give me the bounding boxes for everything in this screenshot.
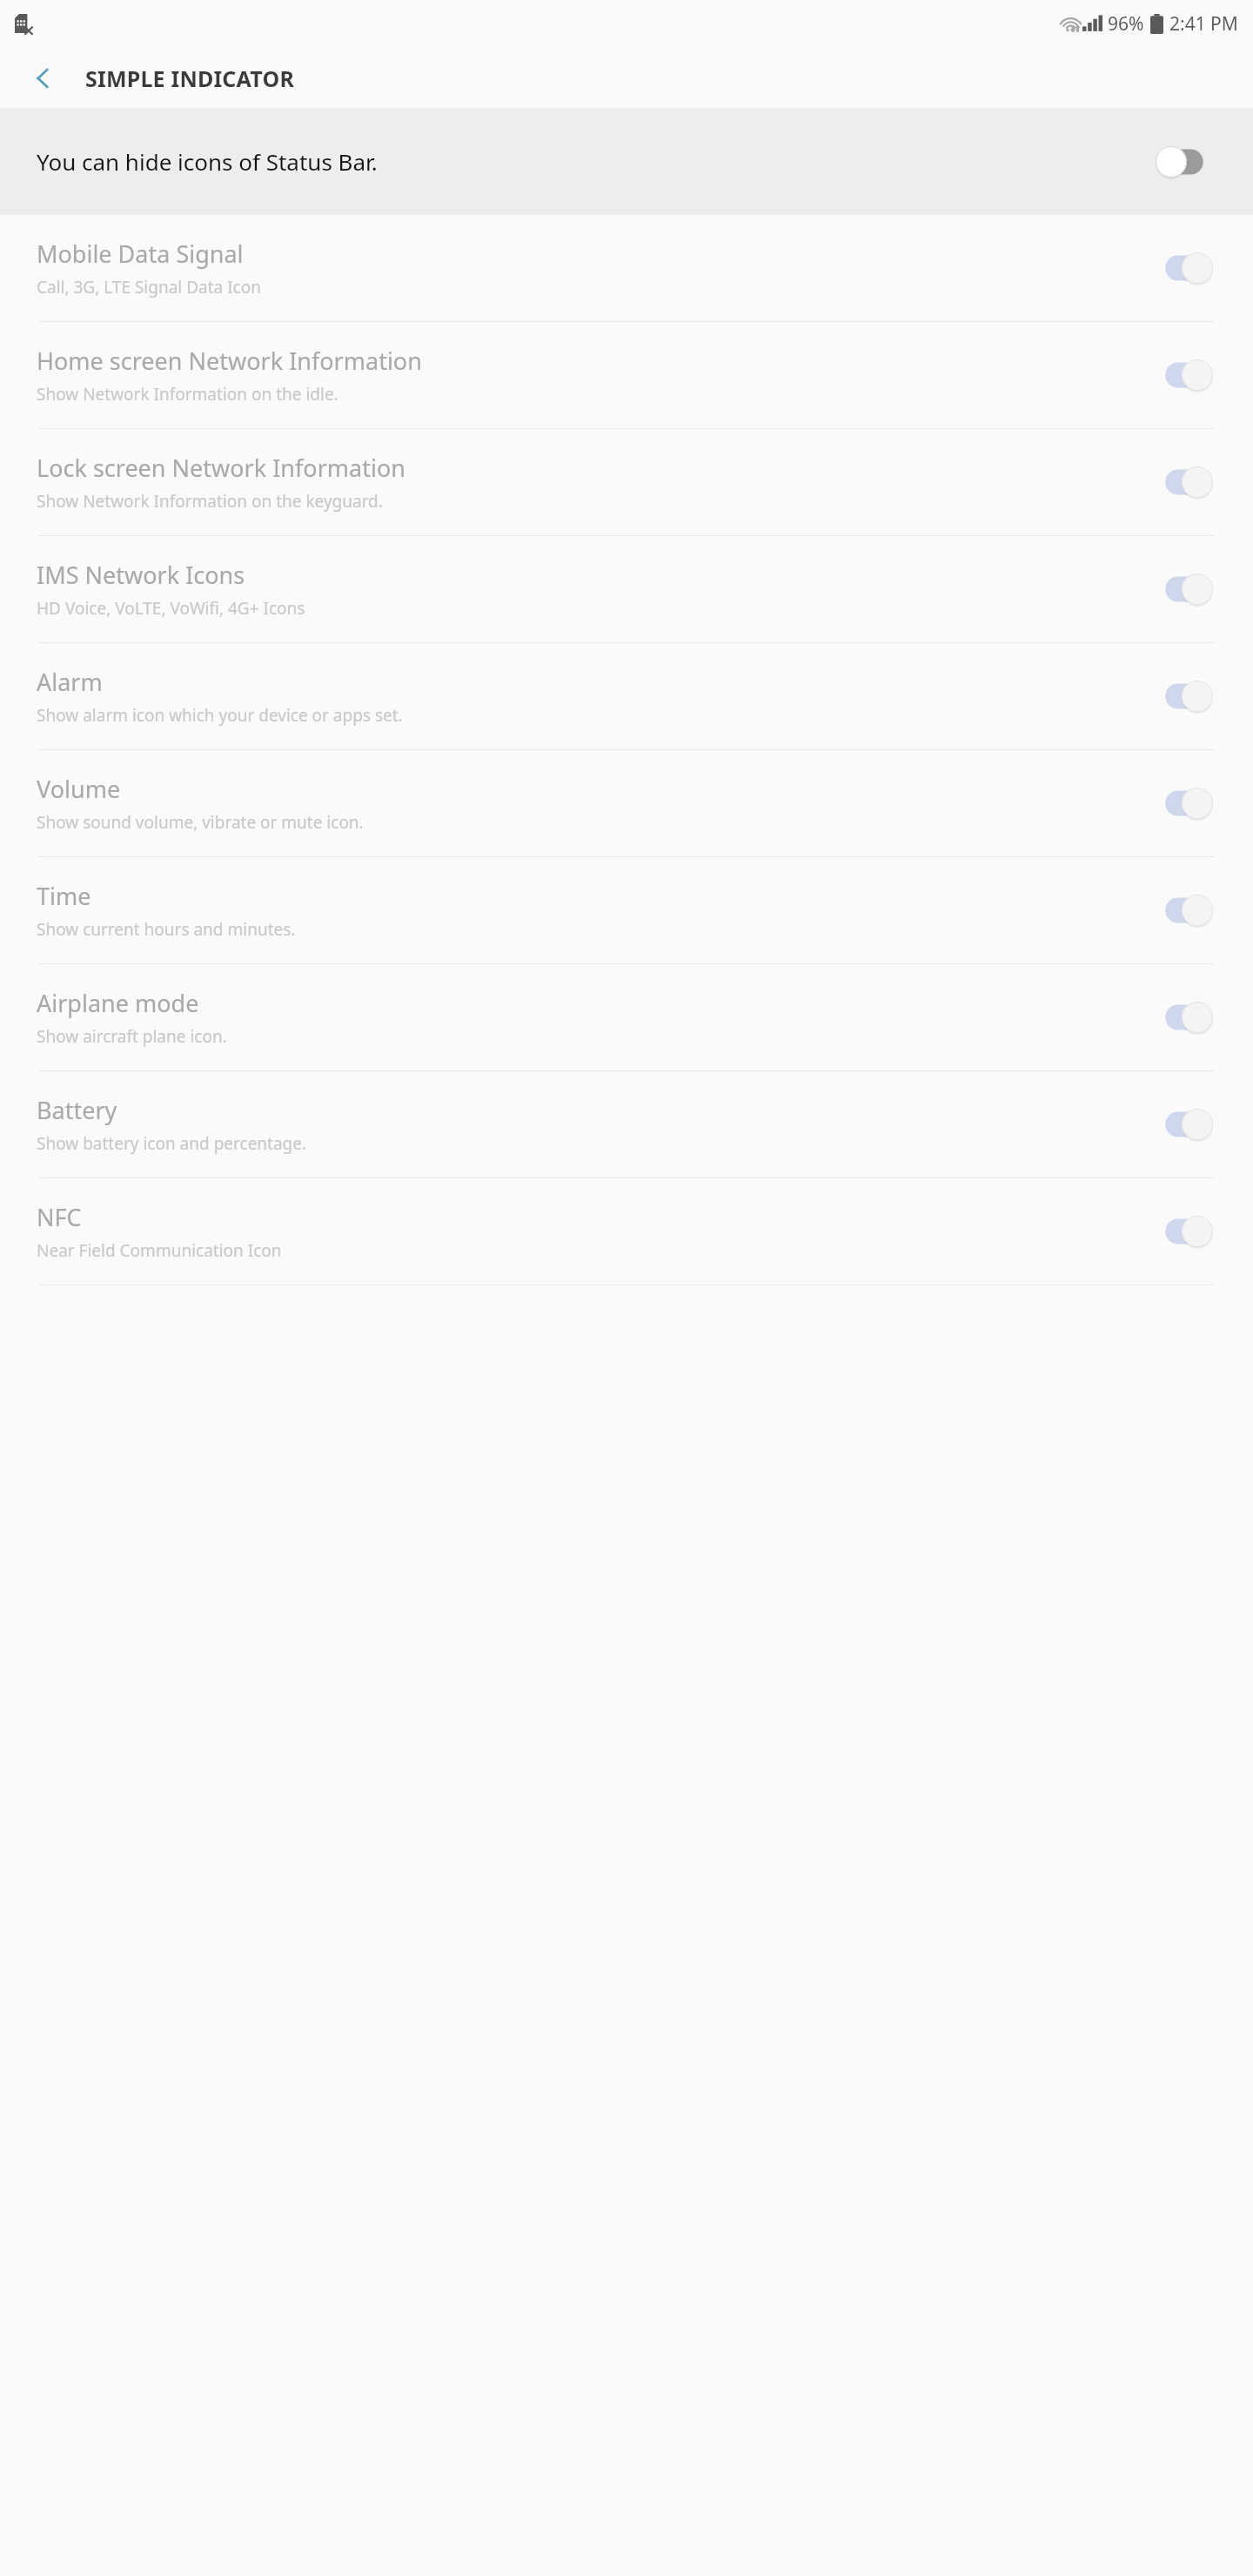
staticText: Time: [37, 880, 91, 912]
button[interactable]: You can hide icons of Status Bar.: [0, 108, 1253, 215]
staticText: Show Network Information on the idle.: [37, 383, 338, 406]
staticText: Volume: [37, 773, 121, 805]
button[interactable]: On: [1156, 788, 1213, 819]
staticText: Battery: [37, 1094, 117, 1126]
staticText: Airplane mode: [37, 987, 199, 1019]
button[interactable]: Volume: [0, 750, 1253, 856]
staticText: Near Field Communication Icon: [37, 1239, 282, 1262]
staticText: Show Network Information on the keyguard…: [37, 490, 383, 513]
staticText: Show current hours and minutes.: [37, 918, 296, 941]
button[interactable]: On: [1156, 252, 1213, 284]
staticText: Call, 3G, LTE Signal Data Icon: [37, 276, 261, 299]
button[interactable]: On: [1156, 1216, 1213, 1247]
button[interactable]: On: [1156, 895, 1213, 926]
staticText: Show sound volume, vibrate or mute icon.: [37, 811, 364, 834]
button[interactable]: Mobile Data Signal: [0, 215, 1253, 321]
staticText: Home screen Network Information: [37, 345, 422, 377]
button[interactable]: On: [1156, 574, 1213, 605]
button[interactable]: Time: [0, 857, 1253, 963]
staticText: SIMPLE INDICATOR: [85, 64, 295, 93]
button[interactable]: Lock screen Network Information: [0, 429, 1253, 535]
button[interactable]: Back: [12, 48, 75, 108]
staticText: You can hide icons of Status Bar.: [37, 146, 1145, 177]
button[interactable]: Airplane mode: [0, 964, 1253, 1070]
button[interactable]: Off: [1156, 146, 1213, 178]
button[interactable]: On: [1156, 1109, 1213, 1140]
button[interactable]: On: [1156, 1002, 1213, 1033]
staticText: Alarm: [37, 666, 103, 698]
button[interactable]: Battery: [0, 1071, 1253, 1177]
button[interactable]: Home screen Network Information: [0, 322, 1253, 428]
staticText: Show alarm icon which your device or app…: [37, 704, 403, 727]
staticText: Mobile Data Signal: [37, 238, 244, 270]
button[interactable]: Alarm: [0, 643, 1253, 749]
button[interactable]: NFC: [0, 1178, 1253, 1285]
staticText: Lock screen Network Information: [37, 452, 405, 484]
staticText: Show battery icon and percentage.: [37, 1132, 307, 1155]
staticText: Show aircraft plane icon.: [37, 1025, 227, 1048]
staticText: 2:41 PM: [1169, 11, 1238, 37]
staticText: NFC: [37, 1201, 82, 1233]
staticText: HD Voice, VoLTE, VoWifi, 4G+ Icons: [37, 597, 305, 620]
button[interactable]: On: [1156, 466, 1213, 498]
staticText: 96%: [1108, 11, 1144, 37]
button[interactable]: IMS Network Icons: [0, 536, 1253, 642]
button[interactable]: On: [1156, 681, 1213, 712]
staticText: IMS Network Icons: [37, 559, 245, 591]
button[interactable]: On: [1156, 359, 1213, 391]
